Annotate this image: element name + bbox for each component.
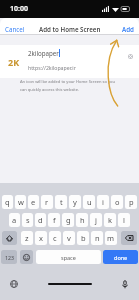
- staticText: g: [66, 215, 71, 225]
- staticText: u: [87, 197, 92, 207]
- button[interactable]: x: [35, 231, 47, 245]
- staticText: Cancel: [5, 25, 25, 33]
- button[interactable]: o: [111, 195, 123, 209]
- button[interactable]: k: [104, 213, 116, 227]
- staticText: f: [53, 215, 56, 225]
- button[interactable]: e: [28, 195, 39, 209]
- staticText: w: [18, 197, 24, 207]
- button[interactable]: Change keyboard: [0, 268, 28, 300]
- staticText: l: [123, 215, 125, 225]
- staticText: b: [81, 233, 86, 243]
- staticText: Add: [122, 25, 134, 33]
- button[interactable]: z: [21, 231, 33, 245]
- staticText: n: [95, 233, 100, 243]
- staticText: e: [31, 197, 36, 207]
- button[interactable]: Backspace: [121, 231, 137, 245]
- button[interactable]: s: [22, 213, 33, 227]
- button[interactable]: Clear text: [124, 50, 136, 62]
- staticText: 2K: [8, 56, 20, 68]
- button[interactable]: Emoji: [20, 250, 33, 264]
- button[interactable]: g: [62, 213, 74, 227]
- button[interactable]: c: [49, 231, 61, 245]
- button[interactable]: b: [77, 231, 89, 245]
- staticText: r: [45, 197, 49, 207]
- staticText: 2kilopaper: [28, 49, 59, 57]
- button[interactable]: u: [83, 195, 95, 209]
- button[interactable]: 123: [1, 250, 17, 264]
- staticText: i: [102, 197, 104, 207]
- staticText: k: [108, 215, 113, 225]
- staticText: 10:00: [10, 4, 28, 14]
- staticText: q: [5, 197, 10, 207]
- button[interactable]: Add: [117, 23, 139, 35]
- button[interactable]: d: [35, 213, 46, 227]
- staticText: 123: [5, 254, 14, 261]
- staticText: h: [80, 215, 85, 225]
- button[interactable]: Dictate: [111, 268, 139, 300]
- button[interactable]: space: [36, 250, 101, 264]
- staticText: x: [39, 233, 43, 243]
- button[interactable]: l: [118, 213, 130, 227]
- staticText: Add to Home Screen: [39, 25, 101, 33]
- staticText: space: [61, 254, 76, 261]
- staticText: t: [60, 197, 63, 207]
- button[interactable]: a: [9, 213, 20, 227]
- button[interactable]: v: [63, 231, 75, 245]
- button[interactable]: p: [125, 195, 137, 209]
- button[interactable]: done: [103, 250, 138, 264]
- staticText: done: [114, 254, 128, 261]
- staticText: z: [25, 233, 29, 243]
- staticText: a: [12, 215, 17, 225]
- staticText: https://2kilopaper.ir: [28, 64, 76, 71]
- button[interactable]: j: [90, 213, 102, 227]
- button[interactable]: m: [105, 231, 117, 245]
- staticText: y: [73, 197, 77, 207]
- staticText: s: [26, 215, 30, 225]
- button[interactable]: y: [69, 195, 81, 209]
- staticText: j: [95, 215, 97, 225]
- staticText: v: [67, 233, 71, 243]
- button[interactable]: h: [76, 213, 88, 227]
- staticText: An icon will be added to your Home Scree…: [20, 79, 121, 92]
- staticText: o: [115, 197, 120, 207]
- button[interactable]: Shift: [2, 231, 17, 245]
- staticText: p: [129, 197, 134, 207]
- button[interactable]: i: [97, 195, 109, 209]
- staticText: m: [107, 233, 115, 243]
- staticText: c: [53, 233, 57, 243]
- button[interactable]: t: [55, 195, 67, 209]
- button[interactable]: Cancel: [0, 23, 30, 35]
- button[interactable]: q: [2, 195, 13, 209]
- button[interactable]: r: [41, 195, 53, 209]
- button[interactable]: n: [91, 231, 103, 245]
- button[interactable]: w: [15, 195, 26, 209]
- button[interactable]: f: [48, 213, 60, 227]
- staticText: d: [38, 215, 43, 225]
